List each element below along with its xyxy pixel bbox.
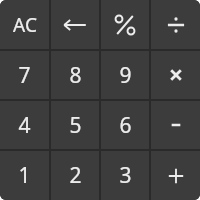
button[interactable]: 8 [51, 51, 99, 99]
button[interactable]: 4 [0, 101, 49, 149]
button[interactable]: 3 [101, 151, 149, 200]
staticText: 9 [119, 61, 132, 90]
staticText: 1 [18, 161, 31, 190]
staticText: 6 [119, 111, 132, 140]
button[interactable]: 6 [101, 101, 149, 149]
button[interactable]: Percent [101, 0, 149, 49]
button[interactable]: Backspace [51, 0, 99, 49]
button[interactable]: 1 [0, 151, 49, 200]
button[interactable]: Minus [151, 101, 200, 149]
button[interactable]: 7 [0, 51, 49, 99]
button[interactable]: Multiply [151, 51, 200, 99]
button[interactable]: Plus [151, 151, 200, 200]
button[interactable]: 9 [101, 51, 149, 99]
button[interactable]: 2 [51, 151, 99, 200]
button[interactable]: AC [0, 0, 49, 49]
staticText: 5 [69, 111, 82, 140]
staticText: 4 [18, 111, 31, 140]
staticText: 8 [69, 61, 82, 90]
staticText: 3 [119, 161, 132, 190]
staticText: 7 [18, 61, 31, 90]
button[interactable]: Divide [151, 0, 200, 49]
button[interactable]: 5 [51, 101, 99, 149]
staticText: AC [13, 12, 37, 38]
staticText: 2 [69, 161, 82, 190]
